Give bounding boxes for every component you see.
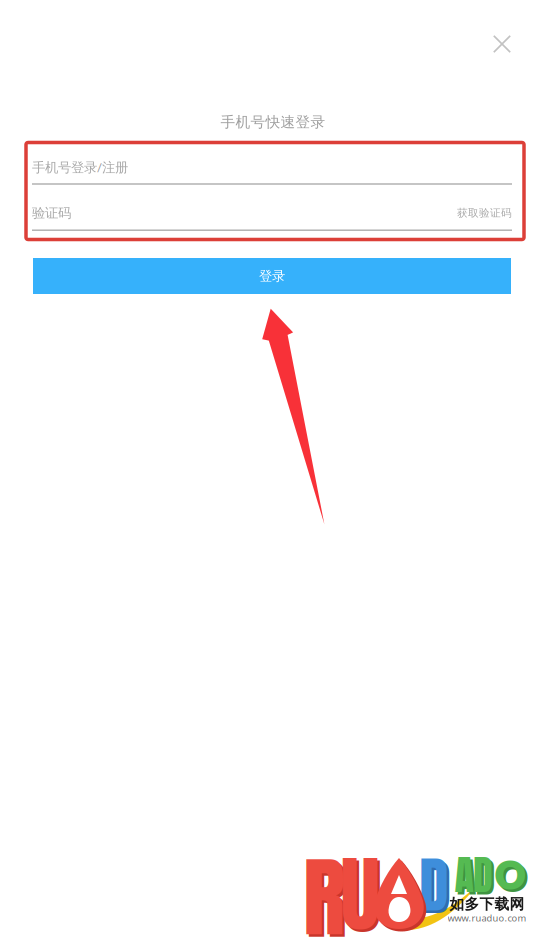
staticText: 手机号快速登录	[220, 113, 325, 131]
staticText: 手机号登录/注册	[32, 158, 128, 176]
staticText: D	[421, 842, 451, 933]
staticText: A	[454, 845, 473, 905]
staticText: D	[473, 845, 493, 905]
staticText: O	[493, 848, 526, 904]
staticText: www.ruaduo.com	[447, 912, 526, 924]
staticText: 获取验证码	[457, 206, 512, 219]
staticText: U	[340, 832, 379, 949]
staticText: D	[475, 847, 495, 908]
button[interactable]: 获取验证码	[457, 201, 512, 225]
button[interactable]: 登录	[33, 258, 511, 294]
staticText: R	[303, 831, 345, 949]
staticText: D	[419, 840, 449, 930]
staticText: 登录	[259, 268, 285, 284]
staticText: U	[343, 834, 382, 949]
button[interactable]: Close	[480, 22, 524, 66]
staticText: 如多下载网	[449, 895, 524, 913]
button[interactable]: 手机号登录/注册	[32, 153, 512, 181]
staticText: O	[496, 850, 529, 907]
staticText: 验证码	[32, 205, 71, 221]
staticText: A	[457, 847, 476, 908]
staticText: R	[305, 833, 347, 949]
